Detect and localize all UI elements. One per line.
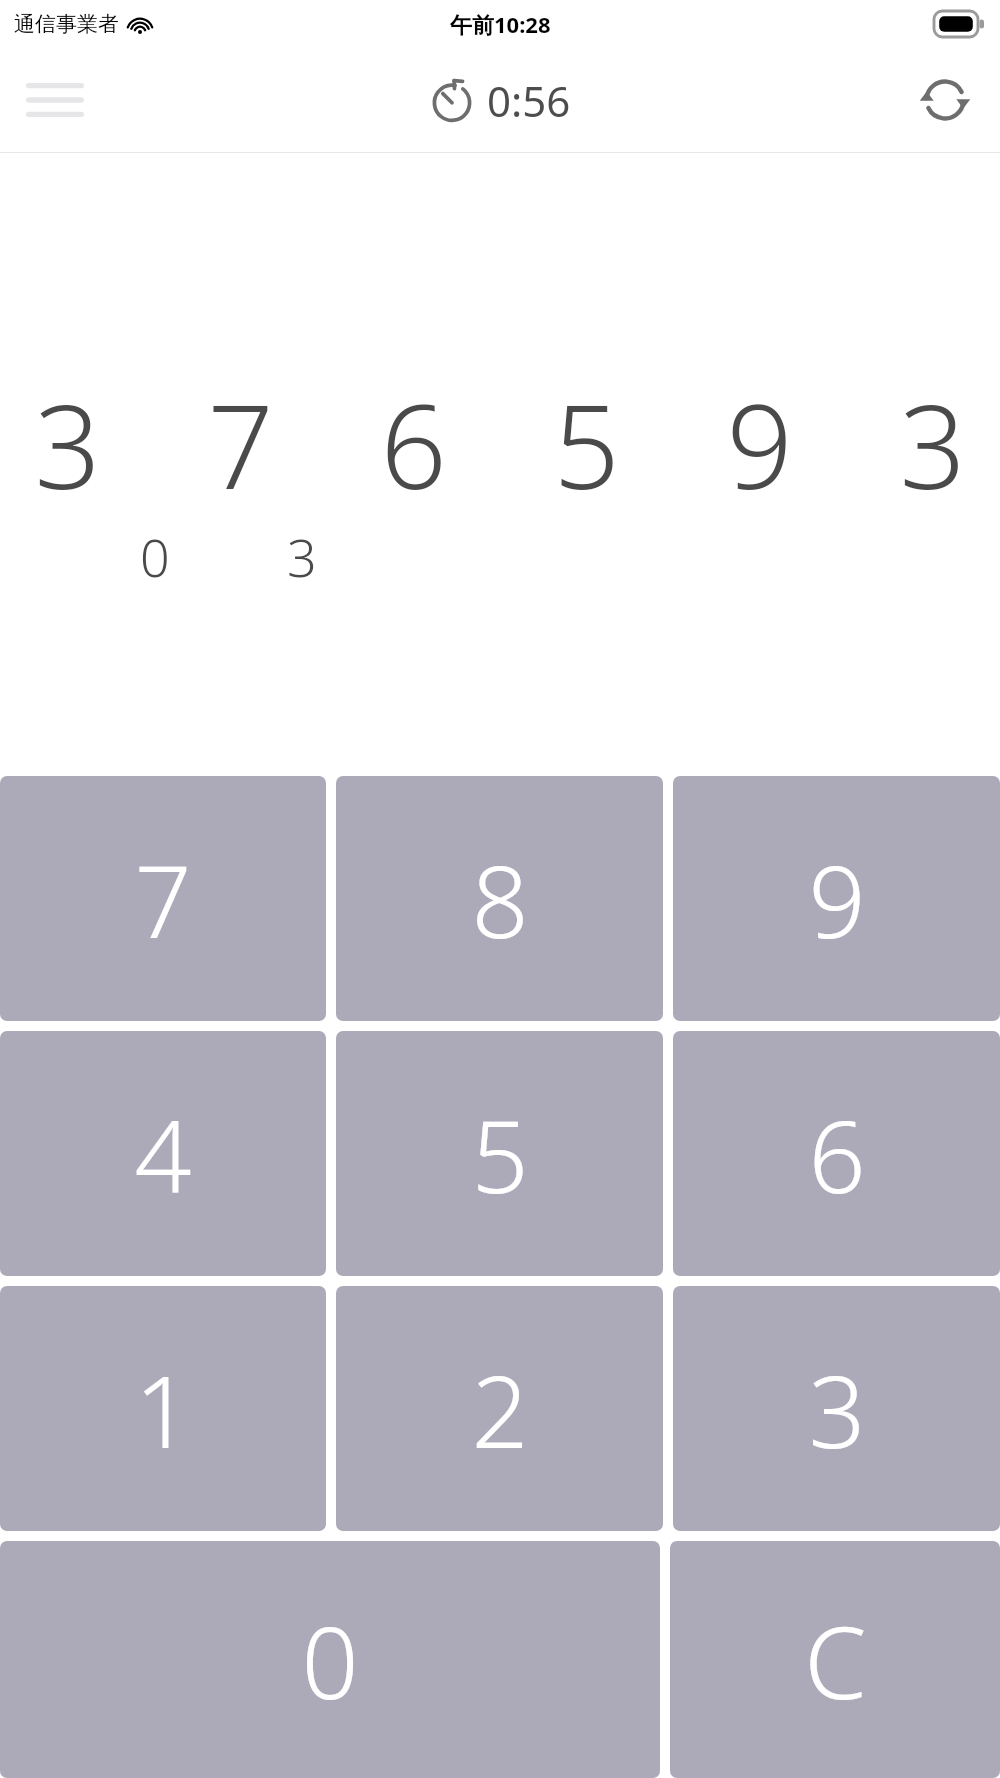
button[interactable]: 0 (0, 1541, 660, 1778)
staticText: 7 (134, 831, 192, 967)
staticText: 9 (808, 831, 866, 967)
staticText: 1 (134, 1341, 192, 1477)
button[interactable]: 5 (336, 1031, 663, 1276)
staticText: 3 (287, 521, 317, 592)
button[interactable]: 1 (0, 1286, 326, 1531)
staticText: 0 (301, 1592, 359, 1728)
button[interactable]: Menu (22, 74, 88, 126)
staticText: 0 (140, 521, 170, 592)
staticText: 6 (808, 1086, 866, 1222)
button[interactable]: 7 (0, 776, 326, 1021)
staticText: 通信事業者 (14, 11, 119, 37)
button[interactable]: 8 (336, 776, 663, 1021)
button[interactable]: 2 (336, 1286, 663, 1531)
staticText: 7 (207, 365, 274, 523)
staticText: 4 (134, 1086, 192, 1222)
staticText: 2 (471, 1341, 529, 1477)
button[interactable]: 6 (673, 1031, 1000, 1276)
staticText: 8 (471, 831, 529, 967)
staticText: 5 (471, 1086, 529, 1222)
staticText: 0:56 (487, 72, 571, 129)
button[interactable]: 9 (673, 776, 1000, 1021)
staticText: 午前10:28 (450, 9, 551, 39)
button[interactable]: 3 (673, 1286, 1000, 1531)
staticText: 9 (726, 365, 793, 523)
staticText: 3 (34, 365, 101, 523)
button[interactable]: C (670, 1541, 1000, 1778)
staticText: C (804, 1592, 867, 1728)
staticText: 6 (380, 365, 447, 523)
staticText: 5 (553, 365, 620, 523)
staticText: 3 (808, 1341, 866, 1477)
staticText: 3 (899, 365, 966, 523)
button[interactable]: Reset (912, 67, 978, 133)
button[interactable]: 0:56 (430, 72, 571, 129)
button[interactable]: 4 (0, 1031, 326, 1276)
